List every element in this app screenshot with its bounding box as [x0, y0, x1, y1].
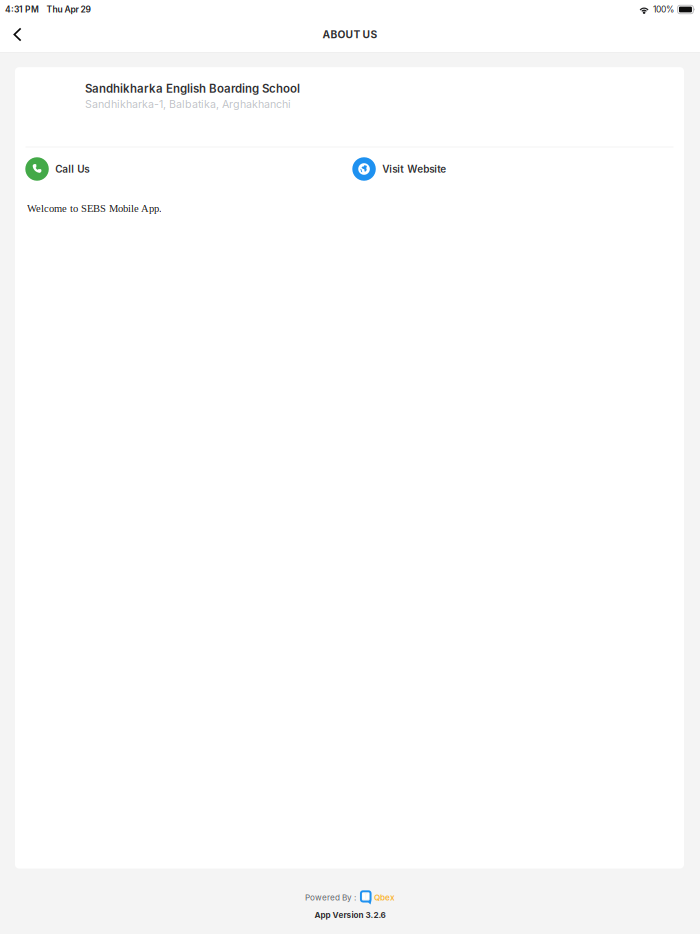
- staticText: Sandhikharka English Boarding School: [85, 82, 300, 96]
- staticText: Thu Apr 29: [46, 4, 90, 15]
- staticText: ABOUT US: [322, 28, 377, 41]
- staticText: Visit Website: [382, 163, 446, 175]
- staticText: App Version 3.2.6: [314, 910, 385, 920]
- button[interactable]: Back: [5, 20, 29, 48]
- staticText: Qbex: [374, 893, 395, 902]
- button[interactable]: Call Us: [25, 149, 352, 189]
- button[interactable]: Visit Website: [352, 149, 518, 189]
- staticText: Sandhikharka-1, Balbatika, Arghakhanchi: [85, 98, 291, 111]
- staticText: 100%: [653, 4, 674, 15]
- staticText: Welcome to SEBS Mobile App.: [27, 203, 162, 214]
- staticText: 4:31 PM: [5, 4, 39, 15]
- staticText: Powered By :: [305, 893, 356, 902]
- staticText: Call Us: [55, 163, 89, 175]
